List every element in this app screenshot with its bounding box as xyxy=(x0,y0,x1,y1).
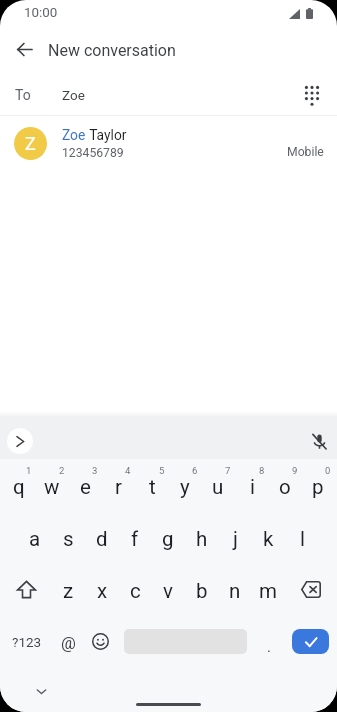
staticText: 9 xyxy=(292,465,298,476)
staticText: a xyxy=(29,527,41,551)
staticText: z xyxy=(63,579,74,603)
button[interactable]: d xyxy=(85,511,119,563)
button[interactable]: 0 xyxy=(301,459,335,511)
button[interactable]: Shift xyxy=(0,563,52,615)
staticText: i xyxy=(250,475,255,499)
staticText: m xyxy=(259,579,277,603)
button[interactable]: 4 xyxy=(101,459,135,511)
staticText: 7 xyxy=(225,465,231,476)
button[interactable]: b xyxy=(185,563,219,615)
staticText: x xyxy=(97,579,108,603)
staticText: y xyxy=(180,475,190,499)
button[interactable]: Hide keyboard xyxy=(30,680,52,702)
button[interactable]: g xyxy=(151,511,185,563)
button[interactable]: 7 xyxy=(201,459,235,511)
button[interactable]: h xyxy=(185,511,219,563)
button[interactable]: c xyxy=(118,563,152,615)
staticText: l xyxy=(300,527,305,551)
button[interactable]: 1 xyxy=(2,459,36,511)
staticText: e xyxy=(80,475,91,499)
staticText: ?123 xyxy=(12,634,42,650)
button[interactable]: s xyxy=(51,511,85,563)
staticText: To xyxy=(15,87,31,103)
button[interactable]: Z xyxy=(0,116,337,171)
staticText: u xyxy=(212,475,224,499)
staticText: h xyxy=(196,527,208,551)
staticText: s xyxy=(63,527,74,551)
staticText: Zoe xyxy=(62,127,86,143)
staticText: 8 xyxy=(259,465,265,476)
staticText: v xyxy=(163,579,173,603)
staticText: Z xyxy=(25,133,36,154)
staticText: 6 xyxy=(192,465,198,476)
button[interactable]: m xyxy=(251,563,285,615)
staticText: f xyxy=(131,527,139,551)
staticText: Taylor xyxy=(86,127,127,143)
staticText: t xyxy=(149,475,156,499)
button[interactable]: z xyxy=(51,563,85,615)
staticText: @ xyxy=(61,634,76,653)
staticText: q xyxy=(13,475,25,499)
staticText: 0 xyxy=(325,465,331,476)
staticText: p xyxy=(312,475,324,499)
staticText: j xyxy=(233,527,238,551)
staticText: g xyxy=(162,527,174,551)
button[interactable]: Dial pad xyxy=(295,77,329,111)
staticText: 3 xyxy=(92,465,98,476)
button[interactable]: 2 xyxy=(35,459,69,511)
staticText: n xyxy=(229,579,241,603)
staticText: Mobile xyxy=(287,145,324,159)
button[interactable]: 3 xyxy=(68,459,102,511)
button[interactable]: x xyxy=(85,563,119,615)
button[interactable]: k xyxy=(251,511,285,563)
button[interactable]: 6 xyxy=(168,459,202,511)
staticText: 4 xyxy=(125,465,131,476)
staticText: c xyxy=(130,579,141,603)
staticText: . xyxy=(267,638,271,656)
button[interactable]: j xyxy=(218,511,252,563)
staticText: o xyxy=(279,475,291,499)
button[interactable]: Backspace xyxy=(285,563,337,615)
button[interactable]: v xyxy=(151,563,185,615)
staticText: r xyxy=(115,475,122,499)
staticText: 1 xyxy=(26,465,32,476)
button[interactable]: Voice input disabled xyxy=(304,426,334,456)
staticText: 10:00 xyxy=(24,5,58,21)
button[interactable]: 5 xyxy=(135,459,169,511)
staticText: d xyxy=(96,527,108,551)
button[interactable]: ?123 xyxy=(0,615,53,667)
staticText: 5 xyxy=(159,465,165,476)
button[interactable]: l xyxy=(285,511,319,563)
staticText: Zoe xyxy=(62,87,85,103)
staticText: b xyxy=(196,579,208,603)
button[interactable]: f xyxy=(118,511,152,563)
button[interactable]: @ xyxy=(53,615,81,667)
button[interactable]: Emoji xyxy=(81,615,120,667)
button[interactable]: 9 xyxy=(268,459,302,511)
button[interactable]: Back xyxy=(8,33,40,65)
button[interactable]: More suggestions xyxy=(7,428,33,454)
button[interactable]: Enter xyxy=(292,629,329,654)
staticText: New conversation xyxy=(48,41,176,60)
staticText: w xyxy=(44,475,60,499)
button[interactable]: n xyxy=(218,563,252,615)
staticText: k xyxy=(263,527,274,551)
button[interactable]: 8 xyxy=(235,459,269,511)
button[interactable]: . xyxy=(251,615,284,667)
staticText: 2 xyxy=(59,465,65,476)
button[interactable]: a xyxy=(18,511,52,563)
staticText: 123456789 xyxy=(62,146,124,160)
